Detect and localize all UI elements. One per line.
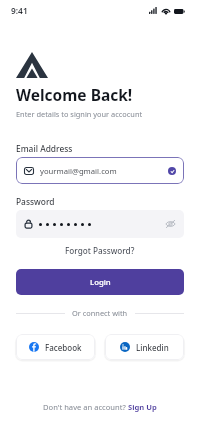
staticText: yourmail@gmail.com	[40, 166, 117, 176]
staticText: Email Address	[16, 143, 73, 154]
button[interactable]: Facebook	[16, 334, 95, 360]
button[interactable]: Linkedin	[105, 334, 184, 360]
staticText: Sign Up	[128, 402, 157, 412]
staticText: Password	[16, 196, 55, 207]
staticText: Enter details to signin your accocunt	[16, 109, 143, 119]
button[interactable]: Show password	[164, 218, 176, 230]
button[interactable]: Forgot Password?	[65, 245, 135, 256]
staticText: Don't have an account?	[43, 402, 128, 412]
staticText: Welcome Back!	[16, 84, 133, 105]
staticText: 9:41	[11, 5, 28, 16]
button[interactable]: Sign Up	[128, 402, 157, 412]
staticText: Facebook	[45, 342, 82, 353]
button[interactable]: Login	[16, 269, 184, 295]
button[interactable]: Show password	[16, 210, 184, 238]
staticText: Or connect with	[72, 308, 128, 318]
staticText: Login	[90, 277, 111, 288]
staticText: Forgot Password?	[65, 245, 135, 256]
button[interactable]: yourmail@gmail.com	[16, 157, 184, 184]
staticText: Linkedin	[136, 342, 169, 353]
